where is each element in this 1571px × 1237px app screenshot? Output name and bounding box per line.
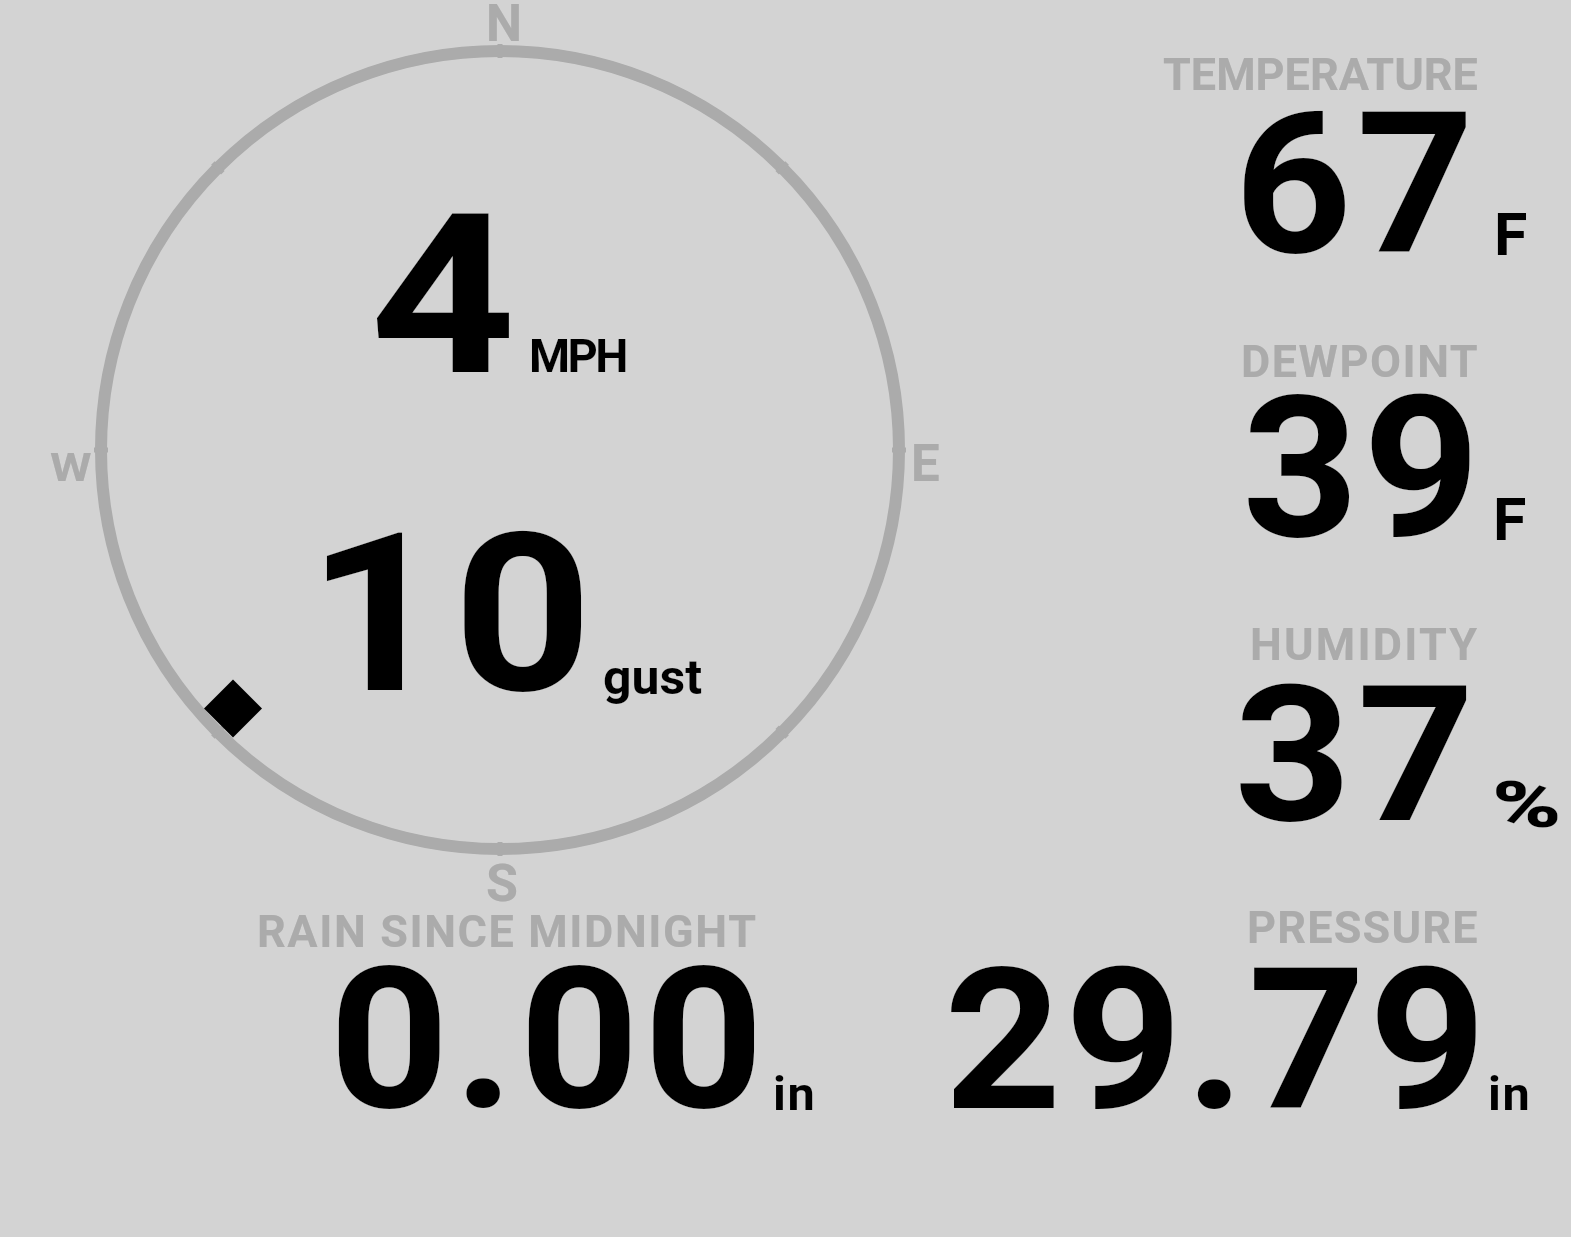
staticText: HUMIDITY <box>1250 618 1480 671</box>
staticText: TEMPERATURE <box>1163 48 1478 101</box>
staticText: 67 <box>1234 70 1479 300</box>
staticText: N <box>486 0 523 54</box>
staticText: 0.00 <box>329 925 769 1155</box>
staticText: F <box>1494 200 1528 269</box>
staticText: 4 <box>370 166 517 426</box>
staticText: 37 <box>1234 645 1480 866</box>
button[interactable]: Humidity 37 percent <box>1140 608 1571 848</box>
staticText: RAIN SINCE MIDNIGHT <box>257 905 758 958</box>
staticText: gust <box>603 649 703 705</box>
staticText: 10 <box>307 485 600 744</box>
staticText: 29.79 <box>944 925 1490 1156</box>
staticText: S <box>486 853 518 914</box>
staticText: % <box>1492 767 1563 843</box>
staticText: MPH <box>529 329 627 383</box>
staticText: 39 <box>1242 353 1485 584</box>
button[interactable]: Temperature 67 degrees Fahrenheit <box>1140 40 1571 280</box>
button[interactable]: Pressure 29.79 inches <box>930 890 1530 1125</box>
button[interactable]: Rain since midnight 0.00 inches <box>240 895 840 1125</box>
staticText: W <box>50 446 92 491</box>
button[interactable]: Dewpoint 39 degrees Fahrenheit <box>1140 325 1571 565</box>
staticText: E <box>911 434 940 494</box>
staticText: DEWPOINT <box>1241 335 1480 388</box>
staticText: F <box>1493 485 1527 554</box>
staticText: in <box>773 1067 816 1121</box>
staticText: in <box>1488 1067 1531 1121</box>
staticText: PRESSURE <box>1247 901 1479 954</box>
button[interactable]: Wind speed and direction <box>60 0 940 900</box>
